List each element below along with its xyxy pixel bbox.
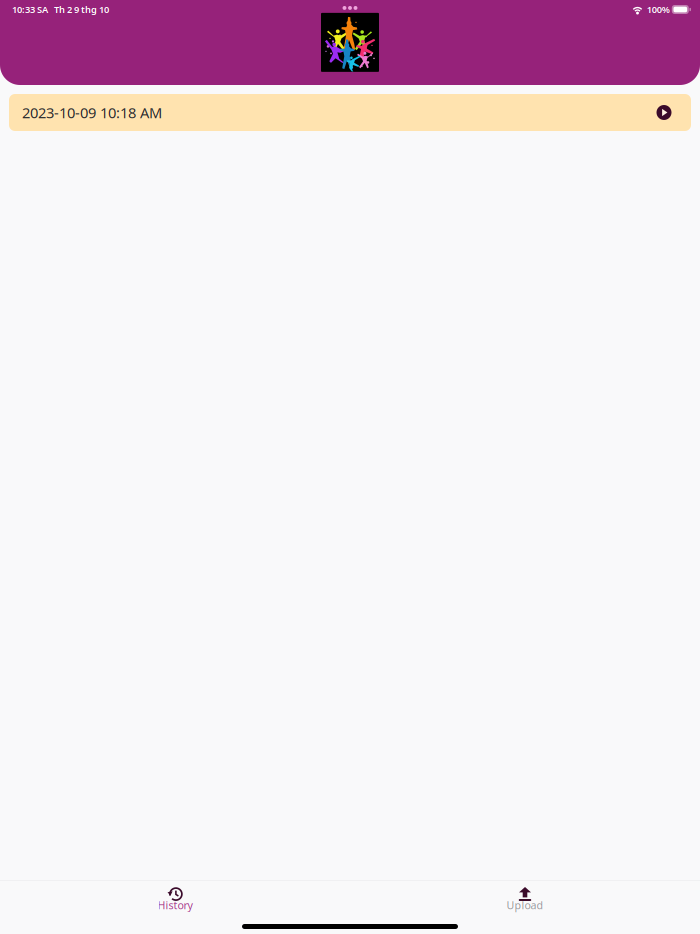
- staticText: Th 2 9 thg 10: [54, 3, 109, 16]
- button[interactable]: 2023-10-09 10:18 AM: [9, 94, 691, 131]
- staticText: 100%: [647, 3, 670, 16]
- button[interactable]: History: [0, 880, 350, 934]
- staticText: Upload: [506, 898, 543, 912]
- staticText: 2023-10-09 10:18 AM: [22, 103, 162, 122]
- button[interactable]: Upload: [350, 880, 700, 934]
- staticText: 10:33 SA: [12, 3, 48, 16]
- staticText: History: [157, 898, 192, 912]
